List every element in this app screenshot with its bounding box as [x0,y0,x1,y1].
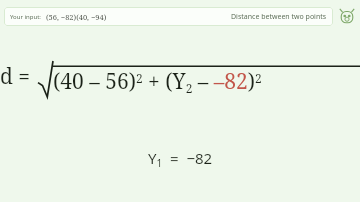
staticText: Your input: [10,13,41,21]
button[interactable]: Your input: [4,7,333,26]
staticText: Y1 = −82 [148,148,213,170]
staticText: (40 – 56)2 + (Y2 – –82)2 [53,67,262,97]
button[interactable]: Omni Calculator logo [338,7,356,25]
staticText: Distance between two points [231,12,327,22]
staticText: (56, −82)(40, −94) [46,12,107,22]
staticText: d = [0,62,31,91]
